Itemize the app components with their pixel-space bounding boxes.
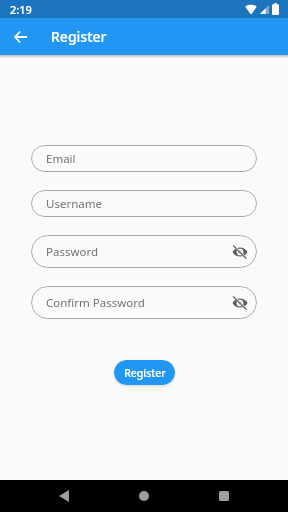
button[interactable]: Email — [31, 145, 257, 172]
staticText: Confirm Password — [46, 295, 145, 311]
button[interactable]: Toggle password visibility — [230, 293, 250, 313]
button[interactable]: Username — [31, 190, 257, 217]
button[interactable]: Back — [46, 480, 82, 512]
staticText: Password — [46, 244, 99, 260]
button[interactable]: Toggle password visibility — [230, 242, 250, 262]
staticText: Register — [51, 27, 107, 46]
staticText: Register — [124, 366, 166, 380]
button[interactable]: Register — [114, 360, 175, 385]
staticText: Username — [46, 196, 102, 212]
button[interactable]: Home — [126, 480, 162, 512]
staticText: 2:19 — [10, 2, 32, 17]
button[interactable]: Back — [8, 25, 32, 49]
button[interactable]: Password — [31, 235, 257, 268]
button[interactable]: Recents — [206, 480, 242, 512]
staticText: Email — [46, 151, 76, 167]
button[interactable]: Confirm Password — [31, 286, 257, 319]
